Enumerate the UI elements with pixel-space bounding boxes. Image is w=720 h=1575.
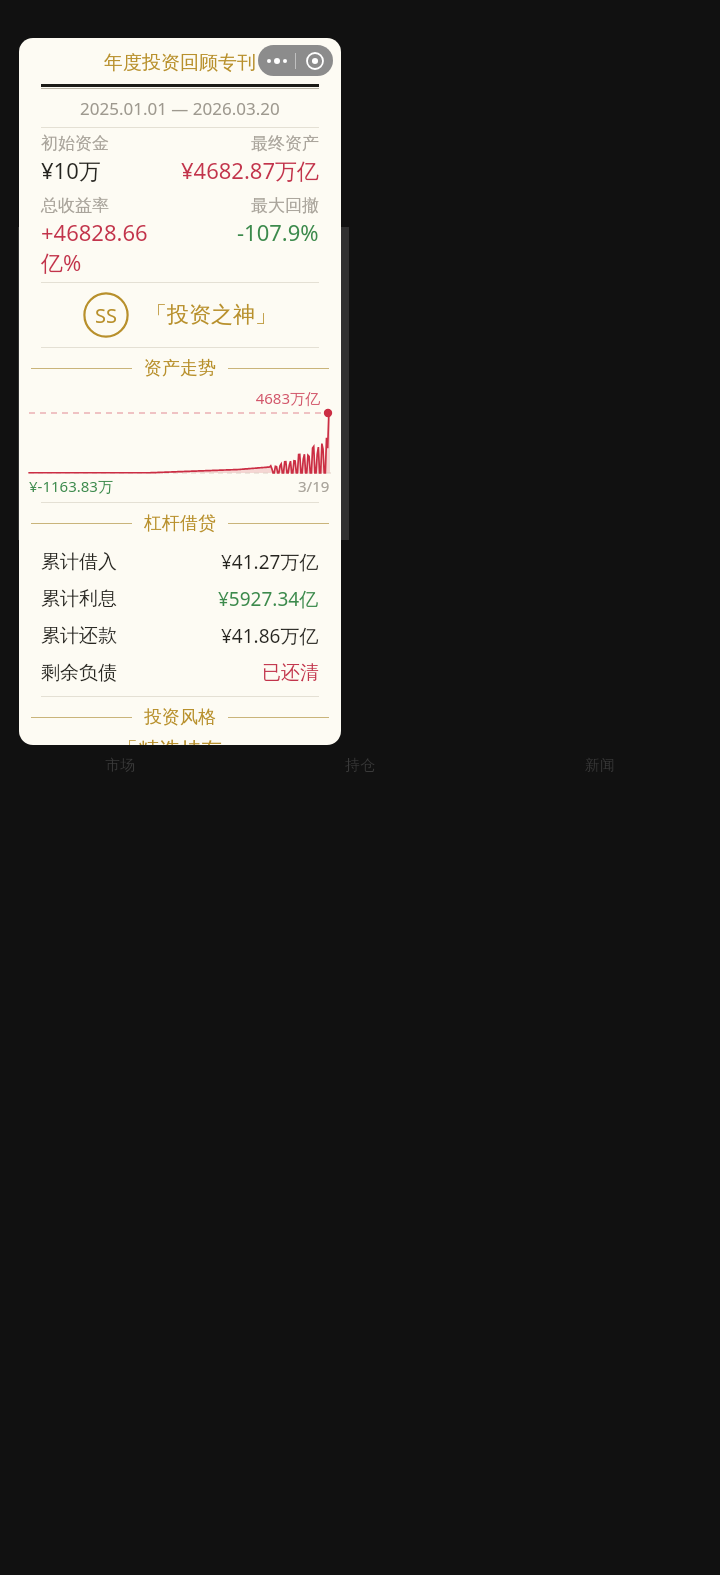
staticText: 投资风格 bbox=[144, 706, 216, 729]
button[interactable]: Close bbox=[296, 45, 333, 76]
staticText: ¥41.86万亿 bbox=[221, 623, 319, 649]
staticText: -107.9% bbox=[237, 217, 319, 247]
staticText: ¥10万 bbox=[41, 155, 101, 185]
staticText: 4683万亿 bbox=[29, 388, 320, 408]
staticText: 持仓 bbox=[345, 756, 375, 775]
staticText: ¥5927.34亿 bbox=[218, 586, 319, 612]
staticText: ¥4682.87万亿 bbox=[181, 155, 319, 185]
button[interactable]: More bbox=[258, 45, 295, 76]
staticText: SS bbox=[95, 302, 117, 329]
staticText: ¥-1163.83万 bbox=[29, 476, 113, 496]
staticText: 总收益率 bbox=[41, 195, 109, 216]
button[interactable]: 市场 bbox=[0, 745, 240, 785]
staticText: 资产走势 bbox=[144, 357, 216, 380]
staticText: 累计还款 bbox=[41, 624, 117, 648]
staticText: 新闻 bbox=[585, 756, 615, 775]
staticText: 「精选持有」 bbox=[117, 737, 243, 745]
staticText: +46828.66亿% bbox=[41, 217, 180, 277]
staticText: 2025.01.01 — 2026.03.20 bbox=[80, 97, 280, 120]
staticText: 最大回撤 bbox=[251, 195, 319, 216]
staticText: 剩余负债 bbox=[41, 661, 117, 685]
staticText: 「投资之神」 bbox=[145, 301, 277, 329]
staticText: 累计借入 bbox=[41, 550, 117, 574]
staticText: 市场 bbox=[105, 756, 135, 775]
staticText: 已还清 bbox=[262, 661, 319, 685]
staticText: 累计利息 bbox=[41, 587, 117, 611]
staticText: 3/19 bbox=[298, 476, 330, 496]
staticText: 年度投资回顾专刊 bbox=[104, 51, 256, 75]
staticText: 杠杆借贷 bbox=[144, 512, 216, 535]
staticText: 最终资产 bbox=[251, 133, 319, 154]
staticText: 初始资金 bbox=[41, 133, 109, 154]
button[interactable]: 持仓 bbox=[240, 745, 480, 785]
staticText: ¥41.27万亿 bbox=[221, 549, 319, 575]
button[interactable]: 新闻 bbox=[480, 745, 720, 785]
